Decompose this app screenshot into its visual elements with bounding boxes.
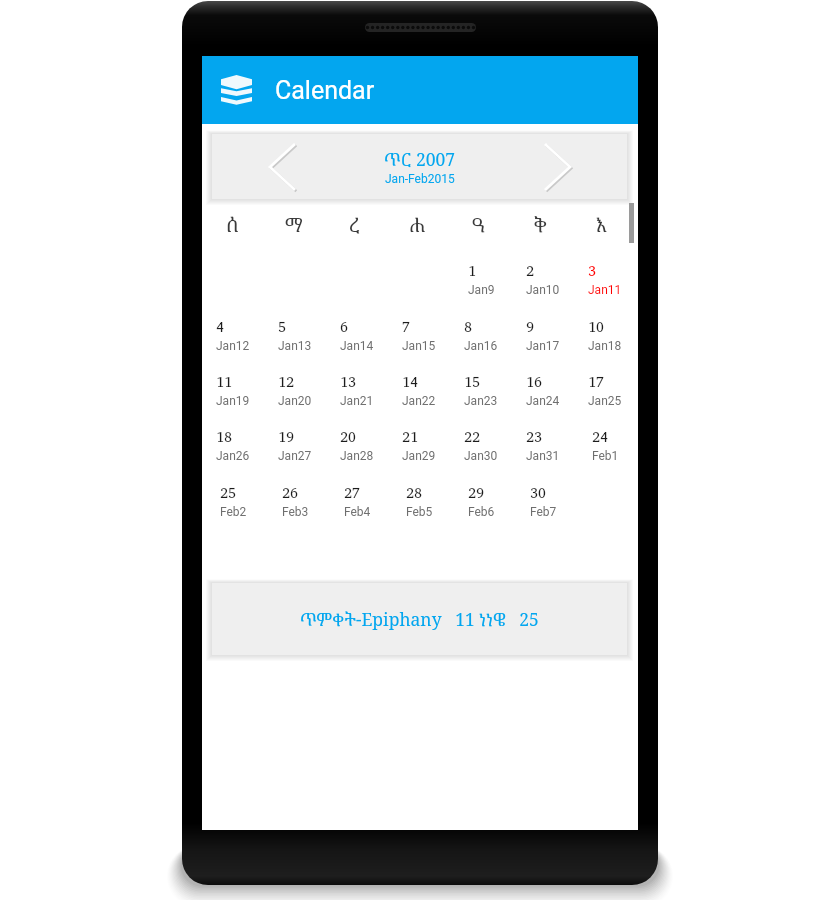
button[interactable]: 1 <box>450 251 512 306</box>
staticText: Jan25 <box>588 394 622 408</box>
staticText: Jan17 <box>526 339 560 353</box>
button[interactable]: 9 <box>512 307 574 362</box>
button[interactable]: 27 <box>326 473 388 528</box>
button[interactable]: 12 <box>264 362 326 417</box>
staticText: Jan9 <box>468 283 495 297</box>
button[interactable]: 29 <box>450 473 512 528</box>
staticText: Feb7 <box>530 505 557 519</box>
button[interactable]: 7 <box>388 307 450 362</box>
staticText: 1 <box>468 261 477 281</box>
button[interactable]: 30 <box>512 473 574 528</box>
button[interactable]: 15 <box>450 362 512 417</box>
staticText: Jan28 <box>340 449 374 463</box>
staticText: 23 <box>526 427 543 447</box>
button[interactable]: 16 <box>512 362 574 417</box>
staticText: 10 <box>588 317 605 337</box>
button[interactable]: Open navigation menu <box>221 75 252 105</box>
staticText: Jan14 <box>340 339 374 353</box>
button[interactable]: 6 <box>326 307 388 362</box>
staticText: 27 <box>344 483 361 503</box>
staticText: Jan26 <box>216 449 250 463</box>
button[interactable]: 28 <box>388 473 450 528</box>
staticText: Jan20 <box>278 394 312 408</box>
staticText: ዓ <box>472 211 486 238</box>
staticText: ማ <box>285 211 303 238</box>
staticText: Jan23 <box>464 394 498 408</box>
staticText: 20 <box>340 427 357 447</box>
staticText: 14 <box>402 372 419 392</box>
staticText: 30 <box>530 483 547 503</box>
staticText: Jan12 <box>216 339 250 353</box>
staticText: Calendar <box>275 76 375 105</box>
staticText: 22 <box>464 427 481 447</box>
staticText: Jan29 <box>402 449 436 463</box>
button[interactable]: 3 <box>574 251 636 306</box>
button[interactable]: 10 <box>574 307 636 362</box>
staticText: ረ <box>349 211 361 238</box>
staticText: 7 <box>402 317 411 337</box>
staticText: 11 <box>216 372 233 392</box>
staticText: 19 <box>278 427 295 447</box>
staticText: Jan21 <box>340 394 374 408</box>
button[interactable]: 17 <box>574 362 636 417</box>
staticText: 3 <box>588 261 597 281</box>
staticText: Jan-Feb2015 <box>385 172 455 186</box>
button[interactable]: 8 <box>450 307 512 362</box>
staticText: ቅ <box>534 211 547 238</box>
staticText: Feb3 <box>282 505 309 519</box>
button[interactable]: 18 <box>202 417 264 472</box>
staticText: 4 <box>216 317 225 337</box>
staticText: Jan30 <box>464 449 498 463</box>
staticText: 5 <box>278 317 287 337</box>
button[interactable]: 14 <box>388 362 450 417</box>
staticText: 12 <box>278 372 295 392</box>
button[interactable]: 5 <box>264 307 326 362</box>
staticText: እ <box>596 211 608 238</box>
staticText: Feb1 <box>592 449 619 463</box>
button[interactable]: 4 <box>202 307 264 362</box>
button[interactable]: 24 <box>574 417 636 472</box>
staticText: 18 <box>216 427 233 447</box>
staticText: 29 <box>468 483 485 503</box>
staticText: Jan16 <box>464 339 498 353</box>
button[interactable]: Next month <box>487 134 627 199</box>
staticText: Feb4 <box>344 505 371 519</box>
staticText: ጥር 2007 <box>384 147 456 171</box>
button[interactable]: 26 <box>264 473 326 528</box>
button[interactable]: 2 <box>512 251 574 306</box>
button[interactable]: 19 <box>264 417 326 472</box>
staticText: Feb6 <box>468 505 495 519</box>
staticText: Jan13 <box>278 339 312 353</box>
staticText: 24 <box>592 427 609 447</box>
button[interactable]: 13 <box>326 362 388 417</box>
staticText: Jan19 <box>216 394 250 408</box>
button[interactable]: 11 <box>202 362 264 417</box>
staticText: 9 <box>526 317 535 337</box>
staticText: Jan24 <box>526 394 560 408</box>
staticText: Jan27 <box>278 449 312 463</box>
staticText: 8 <box>464 317 473 337</box>
button[interactable]: ጥምቀት-Epiphany 11 ነነዌ 25 <box>212 583 627 655</box>
button[interactable]: 25 <box>202 473 264 528</box>
staticText: ጥምቀት-Epiphany 11 ነነዌ 25 <box>300 607 539 631</box>
staticText: ሰ <box>226 211 239 238</box>
staticText: Jan10 <box>526 283 560 297</box>
staticText: 16 <box>526 372 543 392</box>
staticText: 25 <box>220 483 237 503</box>
staticText: 2 <box>526 261 535 281</box>
button[interactable]: 20 <box>326 417 388 472</box>
staticText: Jan18 <box>588 339 622 353</box>
button[interactable]: 23 <box>512 417 574 472</box>
staticText: 28 <box>406 483 423 503</box>
button[interactable]: 21 <box>388 417 450 472</box>
staticText: 21 <box>402 427 419 447</box>
staticText: Feb5 <box>406 505 433 519</box>
staticText: Feb2 <box>220 505 247 519</box>
staticText: 6 <box>340 317 349 337</box>
button[interactable]: Previous month <box>212 134 352 199</box>
button[interactable]: 22 <box>450 417 512 472</box>
staticText: 15 <box>464 372 481 392</box>
staticText: 26 <box>282 483 299 503</box>
staticText: 13 <box>340 372 357 392</box>
button[interactable]: Open navigation menu <box>202 56 638 124</box>
